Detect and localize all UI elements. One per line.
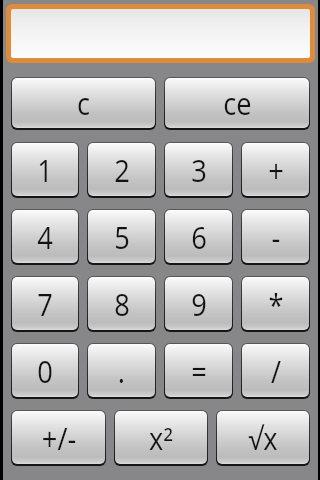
button[interactable]: ce	[165, 78, 309, 128]
button[interactable]: 1	[12, 143, 78, 196]
staticText: 7	[37, 283, 53, 325]
staticText: -	[272, 216, 280, 258]
staticText: 4	[37, 216, 53, 258]
staticText: /	[271, 350, 281, 392]
button[interactable]: 2	[88, 143, 155, 196]
button[interactable]: +/-	[12, 411, 105, 464]
staticText: 2	[114, 149, 130, 191]
button[interactable]: √x	[217, 411, 309, 464]
staticText: 1	[37, 149, 53, 191]
staticText: +/-	[41, 417, 77, 459]
staticText: c	[77, 82, 90, 124]
button[interactable]: =	[165, 344, 232, 397]
button[interactable]: 7	[12, 277, 78, 330]
button[interactable]: 9	[165, 277, 232, 330]
staticText: .	[117, 350, 125, 392]
button[interactable]: c	[12, 78, 155, 128]
staticText: 6	[191, 216, 207, 258]
button[interactable]: x²	[115, 411, 207, 464]
staticText: 9	[191, 283, 207, 325]
staticText: 3	[191, 149, 207, 191]
button[interactable]: 3	[165, 143, 232, 196]
staticText: 5	[114, 216, 130, 258]
staticText: +	[268, 149, 284, 191]
staticText: *	[268, 283, 284, 325]
button[interactable]: 0	[12, 344, 78, 397]
button[interactable]: 4	[12, 210, 78, 263]
button[interactable]: .	[88, 344, 155, 397]
staticText: 0	[37, 350, 53, 392]
staticText: √x	[248, 417, 278, 459]
staticText: x²	[149, 417, 173, 459]
button[interactable]	[11, 9, 310, 58]
staticText: ce	[223, 82, 252, 124]
button[interactable]: /	[242, 344, 309, 397]
button[interactable]: -	[242, 210, 309, 263]
button[interactable]: +	[242, 143, 309, 196]
button[interactable]: 6	[165, 210, 232, 263]
button[interactable]: *	[242, 277, 309, 330]
staticText: 8	[114, 283, 130, 325]
button[interactable]: 5	[88, 210, 155, 263]
button[interactable]: 8	[88, 277, 155, 330]
staticText: =	[191, 350, 207, 392]
